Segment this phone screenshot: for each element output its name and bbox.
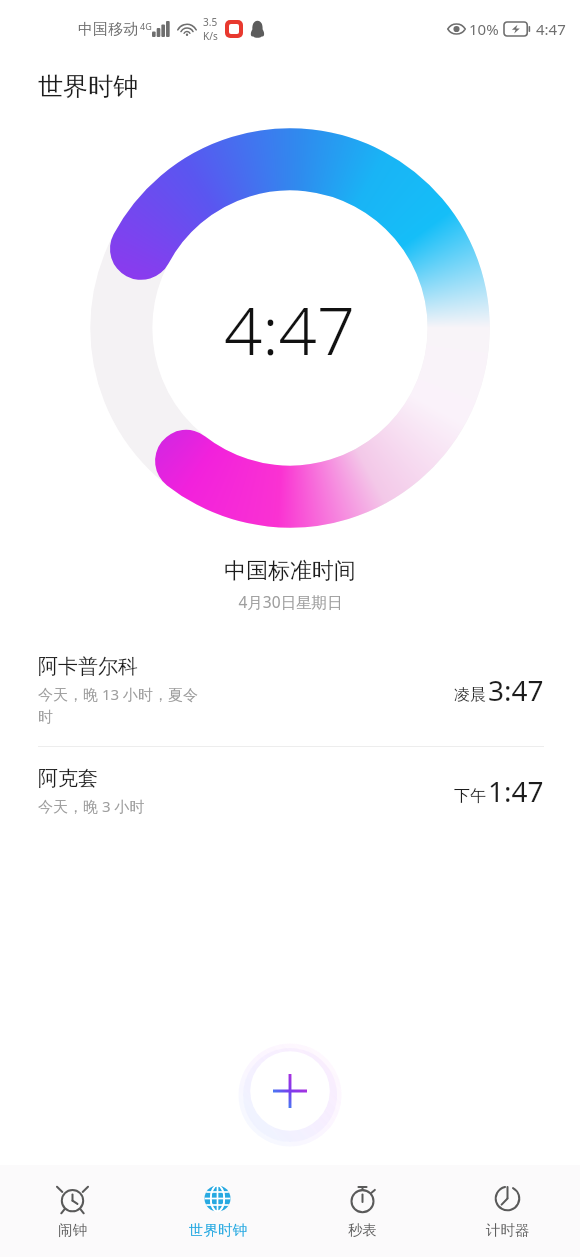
staticText: 阿卡普尔科 bbox=[38, 654, 138, 679]
staticText: 中国标准时间 bbox=[224, 557, 356, 585]
button[interactable]: 秒表 bbox=[290, 1165, 435, 1257]
button[interactable]: 计时器 bbox=[435, 1165, 580, 1257]
staticText: 4:47 bbox=[536, 19, 566, 39]
staticText: 计时器 bbox=[486, 1221, 530, 1239]
staticText: 4G bbox=[140, 20, 152, 32]
staticText: 凌晨 bbox=[454, 685, 486, 705]
staticText: 今天，晚 13 小时，夏令 时 bbox=[38, 684, 198, 727]
staticText: 世界时钟 bbox=[38, 71, 138, 102]
button[interactable]: 阿克套 bbox=[0, 747, 580, 835]
staticText: 下午 bbox=[454, 786, 486, 806]
staticText: 4:47 bbox=[224, 283, 356, 374]
button[interactable]: 阿卡普尔科 bbox=[0, 634, 580, 746]
staticText: 3.5 bbox=[203, 15, 218, 29]
staticText: 3:47 bbox=[488, 671, 544, 709]
staticText: 阿克套 bbox=[38, 766, 98, 791]
button[interactable]: 闹钟 bbox=[0, 1165, 145, 1257]
staticText: 闹钟 bbox=[58, 1221, 87, 1239]
staticText: 秒表 bbox=[348, 1221, 377, 1239]
button[interactable]: 世界时钟 bbox=[145, 1165, 290, 1257]
staticText: 1:47 bbox=[488, 772, 544, 810]
staticText: 4月30日星期日 bbox=[238, 591, 343, 612]
button[interactable]: 添加城市 bbox=[234, 1035, 346, 1147]
staticText: 世界时钟 bbox=[189, 1221, 247, 1239]
staticText: 中国移动 bbox=[78, 20, 138, 39]
staticText: 今天，晚 3 小时 bbox=[38, 796, 145, 816]
staticText: 10% bbox=[469, 19, 499, 39]
staticText: K/s bbox=[203, 29, 218, 43]
